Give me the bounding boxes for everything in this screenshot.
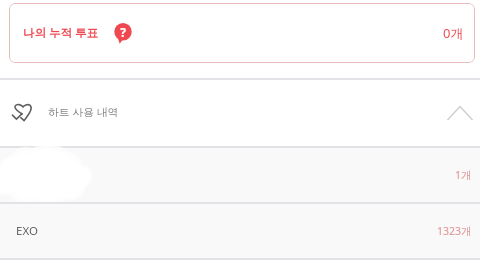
staticText: EXO bbox=[16, 223, 38, 239]
button[interactable]: 도움말 bbox=[114, 23, 132, 44]
button[interactable]: 1개 bbox=[0, 148, 480, 202]
button[interactable]: 나의 누적 투표 bbox=[9, 3, 475, 63]
staticText: 하트 사용 내역 bbox=[48, 104, 119, 119]
button[interactable]: 접기 bbox=[446, 99, 474, 127]
staticText: ? bbox=[120, 24, 126, 40]
staticText: 1개 bbox=[455, 168, 472, 182]
staticText: 1323개 bbox=[437, 224, 472, 238]
button[interactable]: 하트 사용 내역 bbox=[0, 80, 480, 146]
button[interactable]: EXO bbox=[0, 204, 480, 258]
staticText: 나의 누적 투표 bbox=[23, 25, 98, 41]
staticText: 0개 bbox=[443, 24, 464, 42]
